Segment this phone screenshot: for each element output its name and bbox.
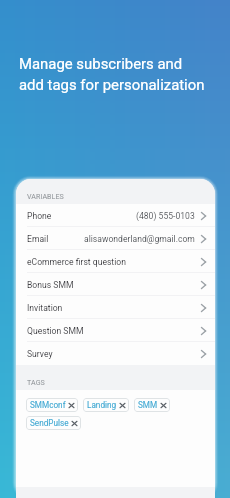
staticText: SMM	[138, 400, 158, 410]
staticText: Bonus SMM	[27, 280, 74, 290]
staticText: Question SMM	[27, 326, 84, 336]
button[interactable]: SMMconf	[26, 398, 78, 412]
staticText: (480) 555-0103	[136, 211, 195, 221]
staticText: Invitation	[27, 303, 63, 313]
other: Remove tag SMMconf	[69, 403, 74, 408]
button[interactable]: Email	[16, 227, 215, 250]
button[interactable]: Bonus SMM	[16, 273, 215, 296]
other: Remove tag SendPulse	[72, 421, 77, 426]
button[interactable]: Invitation	[16, 296, 215, 319]
button[interactable]: Question SMM	[16, 319, 215, 342]
staticText: Manage subscribers and	[19, 55, 183, 72]
button[interactable]: Survey	[16, 342, 215, 365]
staticText: eCommerce first question	[27, 257, 126, 267]
other: Remove tag Landing	[120, 403, 125, 408]
staticText: Email	[27, 234, 49, 244]
staticText: SMMconf	[30, 400, 66, 410]
staticText: TAGS	[27, 378, 45, 386]
staticText: Phone	[27, 211, 52, 221]
button[interactable]: Phone	[16, 204, 215, 227]
other: Remove tag SMM	[161, 403, 166, 408]
button[interactable]: SendPulse	[26, 416, 81, 430]
staticText: alisawonderland@gmail.com	[84, 234, 195, 244]
button[interactable]: eCommerce first question	[16, 250, 215, 273]
staticText: VARIABLES	[27, 192, 64, 200]
staticText: Landing	[87, 400, 117, 410]
staticText: add tags for personalization	[19, 76, 205, 93]
staticText: Survey	[27, 349, 53, 359]
button[interactable]: SMM	[134, 398, 170, 412]
button[interactable]: Landing	[83, 398, 129, 412]
staticText: SendPulse	[30, 418, 69, 428]
